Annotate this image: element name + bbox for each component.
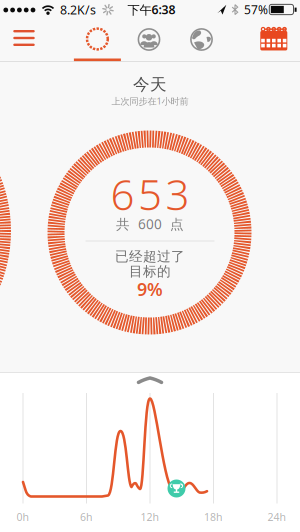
staticText: 0h [16, 510, 29, 524]
staticText: 57% [244, 1, 268, 18]
button[interactable]: 好友 [125, 19, 172, 59]
button[interactable]: 今日活动 [74, 19, 121, 59]
staticText: 9% [137, 277, 163, 301]
staticText: 653 [110, 165, 189, 223]
button[interactable]: 菜单 [4, 19, 44, 57]
staticText: 下午6:38 [127, 1, 175, 18]
staticText: 8.2K/s [60, 1, 96, 18]
staticText: 目标的 [129, 263, 171, 280]
staticText: 18h [204, 510, 223, 524]
staticText: 今天 [133, 74, 167, 95]
staticText: 上次同步在1小时前 [111, 95, 188, 107]
button[interactable]: 发现 [178, 19, 225, 59]
staticText: 共 600 点 [116, 215, 184, 233]
staticText: 12h [140, 510, 159, 524]
staticText: 已经超过了 [115, 248, 185, 265]
staticText: 24h [267, 510, 286, 524]
staticText: 6h [80, 510, 93, 524]
button[interactable]: 日历 [257, 22, 291, 56]
button[interactable]: 展开图表 [134, 376, 165, 386]
